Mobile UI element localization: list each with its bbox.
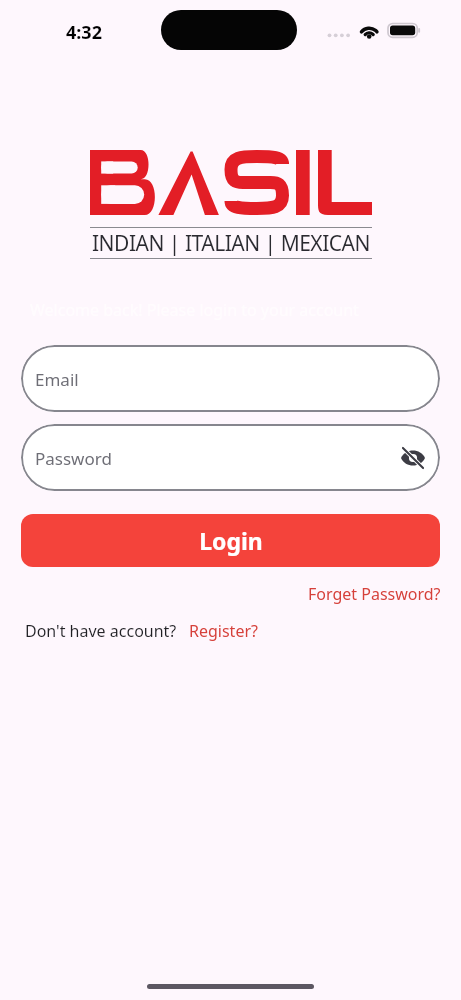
- staticText: Password: [35, 447, 112, 470]
- button[interactable]: Toggle password visibility: [401, 446, 425, 470]
- staticText: INDIAN | ITALIAN | MEXICAN: [92, 229, 370, 258]
- staticText: Login: [199, 525, 263, 556]
- staticText: Register?: [189, 620, 258, 642]
- button[interactable]: Forget Password?: [307, 581, 442, 607]
- staticText: Email: [35, 368, 79, 391]
- staticText: Don't have account?: [25, 620, 177, 642]
- staticText: Forget Password?: [308, 583, 441, 605]
- button[interactable]: Login: [21, 514, 440, 567]
- button[interactable]: Email: [21, 345, 440, 412]
- button[interactable]: Password: [21, 424, 440, 491]
- button[interactable]: Register?: [188, 618, 259, 644]
- staticText: 4:32: [66, 20, 102, 45]
